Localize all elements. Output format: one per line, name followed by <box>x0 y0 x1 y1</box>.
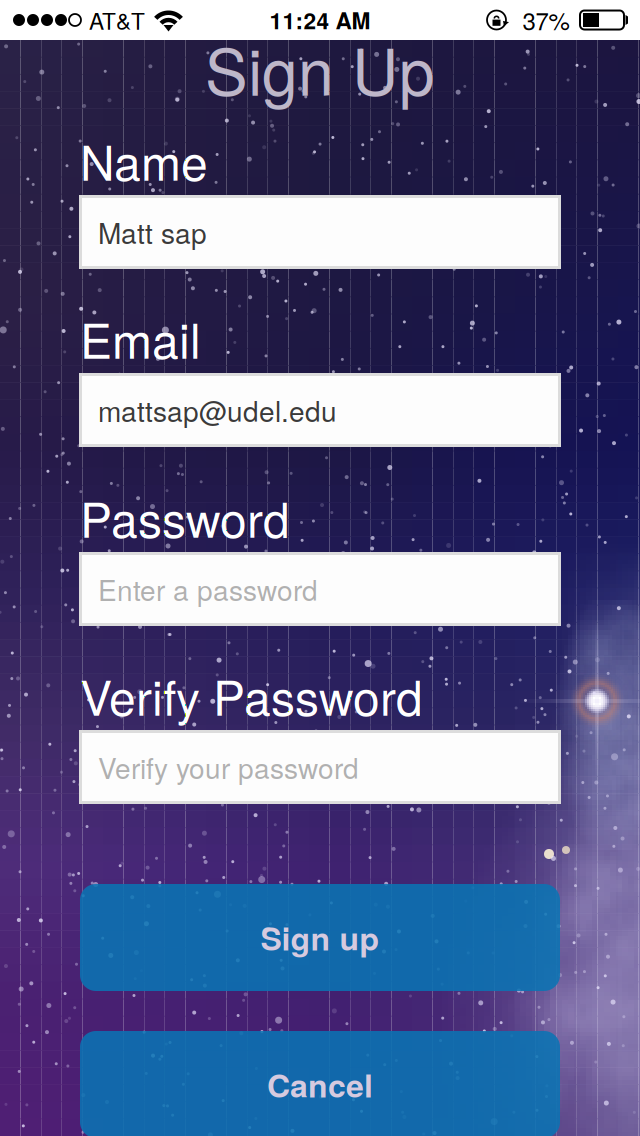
staticText: Verify your password <box>98 747 359 787</box>
button[interactable]: Sign up <box>80 884 560 991</box>
staticText: Sign Up <box>205 22 435 114</box>
staticText: Email <box>80 304 201 372</box>
staticText: 37% <box>522 3 569 37</box>
staticText: Password <box>80 483 290 551</box>
staticText: Cancel <box>267 1062 373 1107</box>
staticText: Verify Password <box>80 661 423 729</box>
staticText: 11:24 AM <box>269 4 370 36</box>
staticText: Enter a password <box>98 569 318 609</box>
button[interactable]: Cancel <box>80 1031 560 1136</box>
staticText: Matt sap <box>98 212 207 252</box>
staticText: mattsap@udel.edu <box>98 390 337 430</box>
staticText: AT&T <box>89 4 145 36</box>
staticText: Sign up <box>260 915 379 960</box>
staticText: Name <box>80 126 208 194</box>
